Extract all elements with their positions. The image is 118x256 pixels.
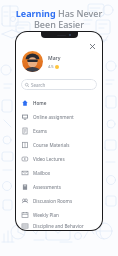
staticText: Discipline and Behavior	[33, 223, 84, 229]
staticText: Learning Has Never Been Easier	[8, 7, 110, 30]
button[interactable]: Discipline and Behavior	[16, 222, 102, 230]
staticText: Exams	[33, 128, 48, 134]
staticText: Search	[31, 82, 46, 88]
staticText: Mailbox	[33, 170, 51, 176]
staticText: Home	[33, 100, 47, 106]
staticText: Weekly Plan	[33, 212, 59, 218]
staticText: 4.5	[48, 64, 54, 69]
staticText: Mary	[48, 55, 61, 62]
button[interactable]: Mailbox	[16, 166, 102, 180]
button[interactable]: Exams	[16, 124, 102, 138]
button[interactable]: Home	[16, 96, 102, 110]
button[interactable]: Online assignment	[16, 110, 102, 124]
button[interactable]: Assessments	[16, 180, 102, 194]
button[interactable]: Course Materials	[16, 138, 102, 152]
button[interactable]: Discussion Rooms	[16, 194, 102, 208]
staticText: Online assignment	[33, 114, 74, 120]
button[interactable]: Video Lectures	[16, 152, 102, 166]
button[interactable]: Close	[88, 42, 97, 51]
button[interactable]: Weekly Plan	[16, 208, 102, 222]
staticText: Course Materials	[33, 142, 70, 148]
staticText: Assessments	[33, 184, 61, 190]
button[interactable]: Search	[21, 79, 97, 90]
button[interactable]: Mary	[22, 51, 96, 72]
staticText: Video Lectures	[33, 156, 65, 162]
staticText: Discussion Rooms	[33, 198, 73, 204]
